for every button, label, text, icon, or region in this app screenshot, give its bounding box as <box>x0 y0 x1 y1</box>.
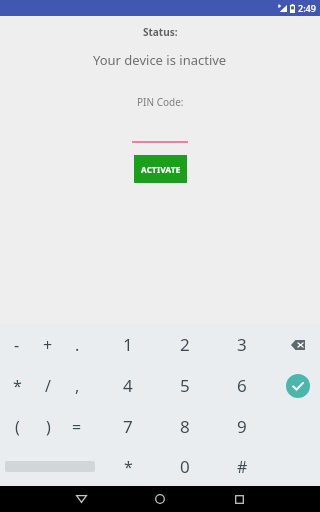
staticText: ACTIVATE <box>141 164 181 175</box>
button[interactable]: = <box>57 406 97 447</box>
button[interactable]: * <box>108 447 148 486</box>
staticText: PIN Code: <box>137 95 184 109</box>
staticText: . <box>75 334 80 356</box>
button[interactable]: ( <box>0 406 37 447</box>
button[interactable]: ACTIVATE <box>134 155 187 183</box>
button[interactable]: 9 <box>222 406 262 447</box>
button[interactable]: Backspace <box>278 324 318 365</box>
staticText: Your device is inactive <box>93 51 227 69</box>
button[interactable]: . <box>57 324 97 365</box>
button[interactable]: , <box>57 365 97 406</box>
staticText: 5 <box>180 374 190 397</box>
staticText: 7 <box>123 415 133 438</box>
button[interactable]: # <box>222 447 262 486</box>
button[interactable]: Home <box>145 486 175 512</box>
staticText: 8 <box>180 415 190 438</box>
button[interactable]: Enter <box>278 365 318 406</box>
button[interactable]: 5 <box>165 365 205 406</box>
staticText: / <box>45 375 51 397</box>
staticText: 9 <box>237 415 247 438</box>
staticText: - <box>14 334 20 356</box>
staticText: # <box>237 456 248 478</box>
staticText: 2 <box>180 333 190 356</box>
button[interactable]: - <box>0 324 37 365</box>
staticText: 2:49 <box>298 2 316 14</box>
button[interactable]: 7 <box>108 406 148 447</box>
button[interactable]: ) <box>28 406 68 447</box>
staticText: 3 <box>237 333 247 356</box>
button[interactable]: * <box>0 365 37 406</box>
staticText: 1 <box>123 333 133 356</box>
button[interactable]: 8 <box>165 406 205 447</box>
staticText: 6 <box>237 374 247 397</box>
button[interactable]: Recents <box>224 486 254 512</box>
staticText: ) <box>46 416 51 438</box>
button[interactable]: / <box>28 365 68 406</box>
button[interactable]: 6 <box>222 365 262 406</box>
button[interactable]: 3 <box>222 324 262 365</box>
button[interactable]: 2 <box>165 324 205 365</box>
staticText: * <box>13 375 22 397</box>
staticText: 0 <box>180 455 190 478</box>
staticText: Status: <box>143 25 178 39</box>
staticText: = <box>72 416 82 438</box>
staticText: + <box>43 334 53 356</box>
button[interactable]: 0 <box>165 447 205 486</box>
button[interactable]: + <box>28 324 68 365</box>
button[interactable]: 1 <box>108 324 148 365</box>
staticText: , <box>75 375 80 397</box>
button[interactable]: Back <box>66 486 96 512</box>
button[interactable]: Space <box>5 447 95 486</box>
staticText: 4 <box>123 374 133 397</box>
staticText: ( <box>15 416 20 438</box>
staticText: * <box>124 456 133 478</box>
button[interactable]: 4 <box>108 365 148 406</box>
button[interactable]: PIN code field <box>132 129 188 143</box>
